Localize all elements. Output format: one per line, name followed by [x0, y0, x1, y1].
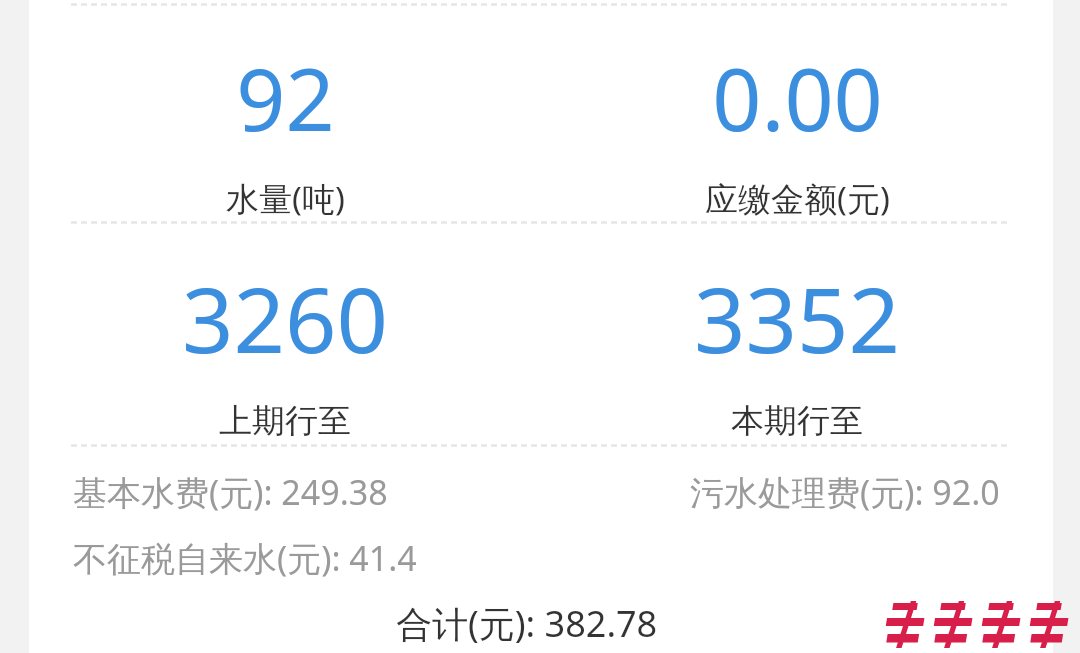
button[interactable]: 0.00 [705, 39, 890, 221]
button[interactable]: 3260 [182, 257, 388, 442]
other: 声远论坛 forum watermark [880, 600, 1072, 650]
staticText: 本期行至 [731, 400, 863, 442]
staticText: 不征税自来水(元): 41.4 [73, 535, 417, 581]
staticText: 基本水费(元): 249.38 [73, 469, 388, 515]
staticText: 应缴金额(元) [705, 176, 890, 221]
staticText: 污水处理费(元): 92.0 [690, 469, 1000, 515]
staticText: 合计(元): 382.78 [396, 599, 658, 648]
button[interactable]: 92 [226, 39, 345, 221]
staticText: 92 [236, 39, 335, 156]
staticText: 0.00 [712, 39, 883, 156]
staticText: 3260 [182, 257, 388, 380]
staticText: 上期行至 [219, 400, 351, 442]
staticText: 3352 [694, 257, 900, 380]
staticText: 水量(吨) [226, 176, 345, 221]
button[interactable]: 3352 [694, 257, 900, 442]
